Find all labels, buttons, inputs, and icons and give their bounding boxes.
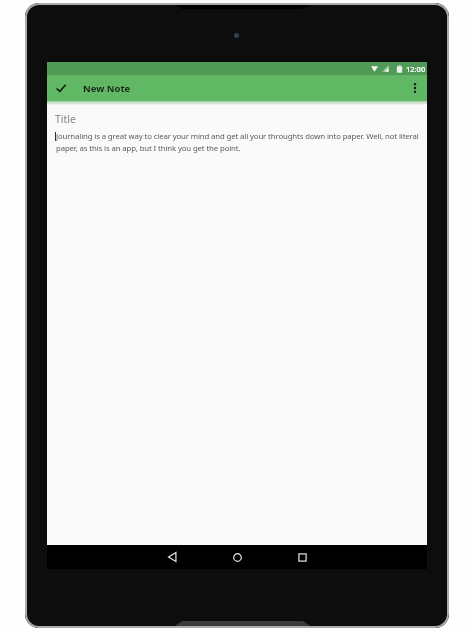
staticText: Journaling is a great way to clear your … [56, 131, 419, 153]
button[interactable] [47, 75, 75, 101]
button[interactable] [403, 75, 427, 101]
button[interactable] [217, 545, 257, 569]
staticText: 12:00 [406, 64, 426, 74]
button[interactable] [282, 545, 322, 569]
button[interactable] [152, 545, 192, 569]
button[interactable]: Journaling is a great way to clear your … [55, 131, 425, 153]
staticText: Title [55, 112, 76, 126]
staticText: New Note [83, 82, 131, 95]
button[interactable]: Title [55, 112, 425, 126]
